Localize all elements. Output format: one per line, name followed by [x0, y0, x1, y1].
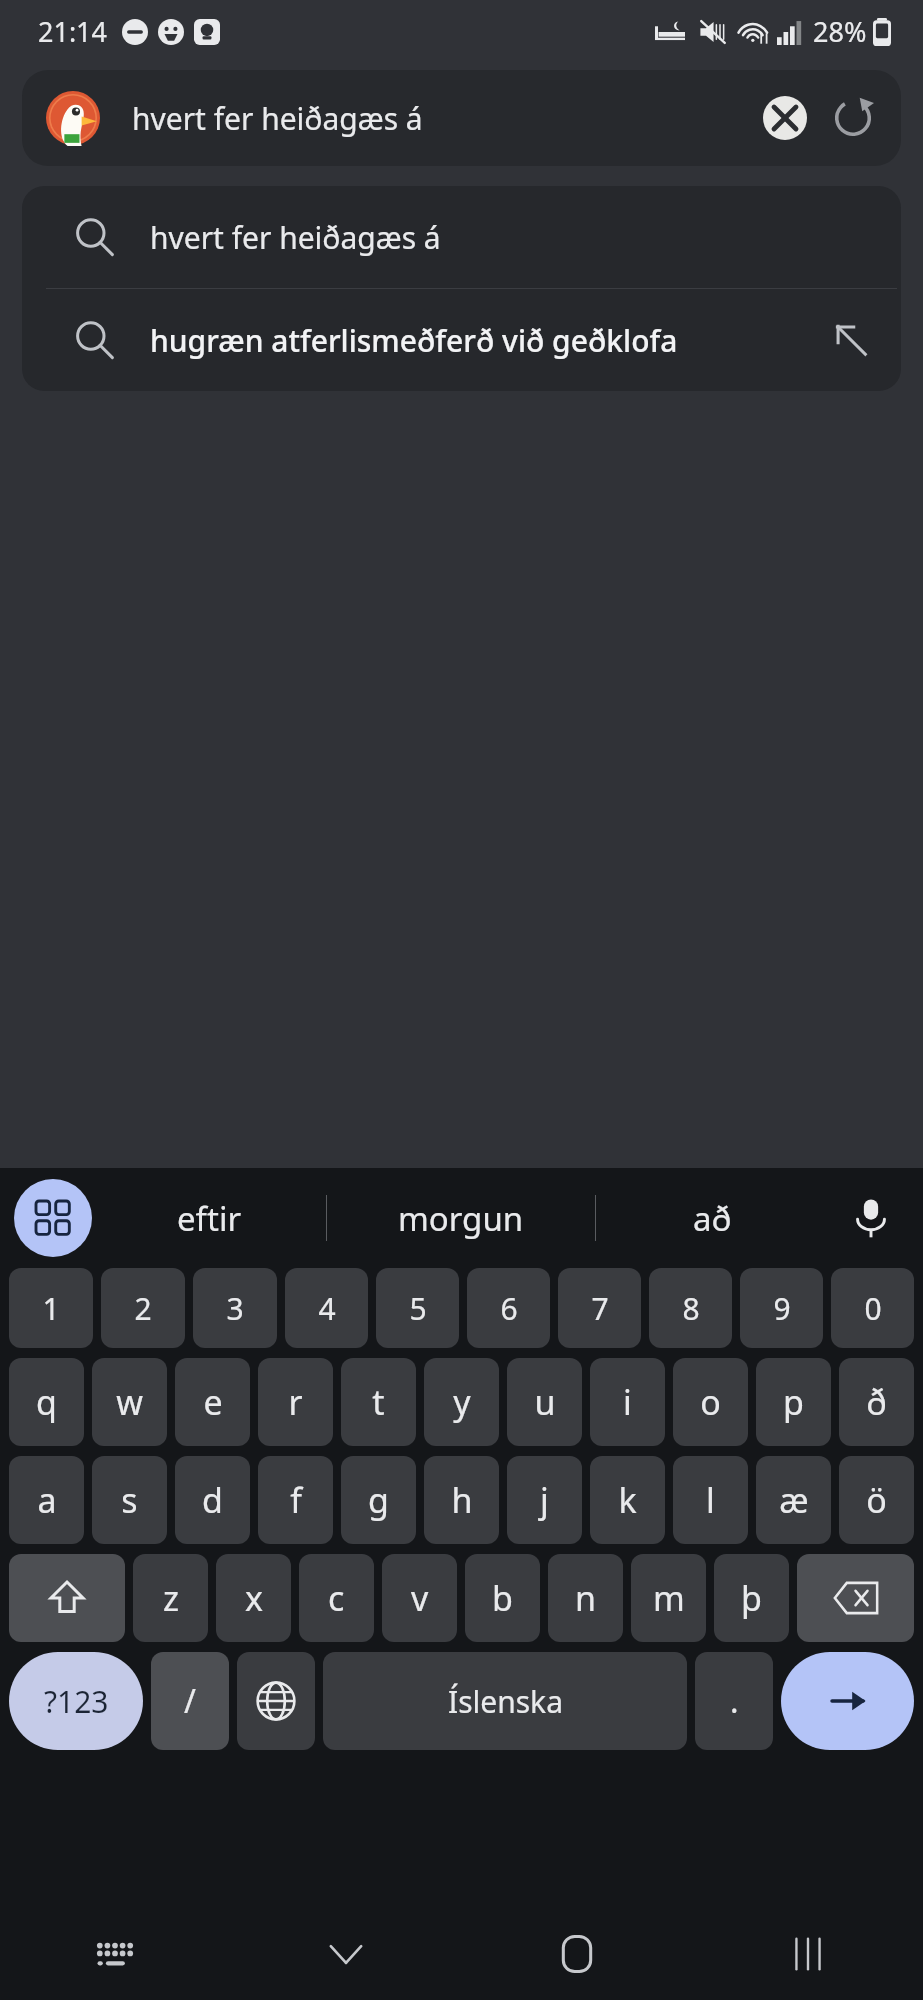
staticText: q — [36, 1379, 57, 1425]
button[interactable]: Íslenska — [323, 1652, 687, 1750]
staticText: 6 — [500, 1288, 518, 1329]
button[interactable]: y — [424, 1358, 499, 1446]
staticText: 5 — [409, 1288, 427, 1329]
staticText: 8 — [682, 1288, 700, 1329]
button[interactable]: 6 — [467, 1268, 550, 1348]
staticText: g — [368, 1477, 389, 1523]
staticText: 21:14 — [38, 13, 108, 50]
button[interactable]: m — [631, 1554, 706, 1642]
button[interactable]: n — [548, 1554, 623, 1642]
button[interactable]: d — [175, 1456, 250, 1544]
staticText: 4 — [318, 1288, 336, 1329]
button[interactable]: Toolbar — [14, 1179, 92, 1257]
staticText: ?123 — [44, 1681, 109, 1722]
staticText: eftir — [177, 1196, 242, 1241]
button[interactable]: hvert fer heiðagæs á — [22, 186, 901, 288]
staticText: r — [288, 1379, 303, 1425]
button[interactable]: h — [424, 1456, 499, 1544]
staticText: æ — [779, 1477, 809, 1523]
button[interactable]: w — [92, 1358, 167, 1446]
staticText: að — [693, 1196, 732, 1241]
button[interactable]: Hide keyboard — [230, 1908, 461, 2000]
button[interactable]: i — [590, 1358, 665, 1446]
staticText: 0 — [864, 1288, 882, 1329]
button[interactable]: u — [507, 1358, 582, 1446]
staticText: 7 — [591, 1288, 609, 1329]
button[interactable]: s — [92, 1456, 167, 1544]
staticText: ö — [866, 1477, 887, 1523]
button[interactable]: 1 — [9, 1268, 93, 1348]
button[interactable]: a — [9, 1456, 84, 1544]
button[interactable]: z — [133, 1554, 208, 1642]
button[interactable]: Enter — [781, 1652, 914, 1750]
button[interactable]: 7 — [558, 1268, 641, 1348]
button[interactable]: b — [465, 1554, 540, 1642]
button[interactable]: Keyboard layout — [0, 1908, 230, 2000]
staticText: e — [203, 1379, 223, 1425]
button[interactable]: c — [299, 1554, 374, 1642]
staticText: v — [411, 1575, 429, 1621]
button[interactable]: g — [341, 1456, 416, 1544]
button[interactable]: 0 — [831, 1268, 914, 1348]
staticText: u — [534, 1379, 556, 1425]
staticText: p — [783, 1379, 804, 1425]
button[interactable]: f — [258, 1456, 333, 1544]
button[interactable]: . — [695, 1652, 773, 1750]
button[interactable]: Voice input — [829, 1176, 913, 1260]
button[interactable]: ö — [839, 1456, 914, 1544]
button[interactable]: Clear — [753, 86, 817, 150]
button[interactable]: j — [507, 1456, 582, 1544]
staticText: i — [623, 1379, 632, 1425]
staticText: k — [618, 1477, 637, 1523]
button[interactable]: 3 — [193, 1268, 277, 1348]
staticText: t — [372, 1379, 385, 1425]
staticText: hvert fer heiðagæs á — [150, 217, 819, 258]
button[interactable]: hvert fer heiðagæs á — [22, 70, 901, 166]
staticText: 9 — [773, 1288, 791, 1329]
button[interactable]: v — [382, 1554, 457, 1642]
staticText: Íslenska — [448, 1681, 563, 1722]
button[interactable]: 8 — [649, 1268, 732, 1348]
staticText: / — [184, 1679, 196, 1723]
staticText: morgun — [398, 1196, 524, 1241]
button[interactable]: / — [151, 1652, 229, 1750]
button[interactable]: k — [590, 1456, 665, 1544]
button[interactable]: ð — [839, 1358, 914, 1446]
button[interactable]: p — [756, 1358, 831, 1446]
button[interactable]: l — [673, 1456, 748, 1544]
staticText: x — [245, 1575, 263, 1621]
staticText: . — [730, 1679, 739, 1723]
staticText: b — [492, 1575, 513, 1621]
button[interactable]: r — [258, 1358, 333, 1446]
button[interactable]: t — [341, 1358, 416, 1446]
staticText: w — [116, 1379, 143, 1425]
button[interactable]: Reload — [821, 86, 885, 150]
button[interactable]: e — [175, 1358, 250, 1446]
button[interactable]: 9 — [740, 1268, 823, 1348]
staticText: n — [575, 1575, 597, 1621]
staticText: 3 — [226, 1288, 244, 1329]
staticText: s — [121, 1477, 138, 1523]
button[interactable]: þ — [714, 1554, 789, 1642]
staticText: c — [328, 1575, 345, 1621]
button[interactable]: 5 — [376, 1268, 459, 1348]
button[interactable]: q — [9, 1358, 84, 1446]
button[interactable]: æ — [756, 1456, 831, 1544]
button[interactable]: ?123 — [9, 1652, 143, 1750]
staticText: þ — [741, 1575, 762, 1621]
button[interactable]: 2 — [101, 1268, 185, 1348]
button[interactable]: Shift — [9, 1554, 125, 1642]
button[interactable]: Change language — [237, 1652, 315, 1750]
button[interactable]: Recents — [692, 1908, 923, 2000]
button[interactable]: o — [673, 1358, 748, 1446]
staticText: 1 — [42, 1288, 60, 1329]
staticText: 28% — [813, 13, 867, 50]
button[interactable]: x — [216, 1554, 291, 1642]
button[interactable]: Backspace — [797, 1554, 914, 1642]
staticText: d — [202, 1477, 223, 1523]
staticText: hugræn atferlismeðferð við geðklofa — [150, 320, 819, 361]
button[interactable]: Home — [461, 1908, 692, 2000]
button[interactable]: hugræn atferlismeðferð við geðklofa — [22, 289, 901, 391]
button[interactable]: 4 — [285, 1268, 368, 1348]
button[interactable]: Insert suggestion — [819, 308, 883, 372]
